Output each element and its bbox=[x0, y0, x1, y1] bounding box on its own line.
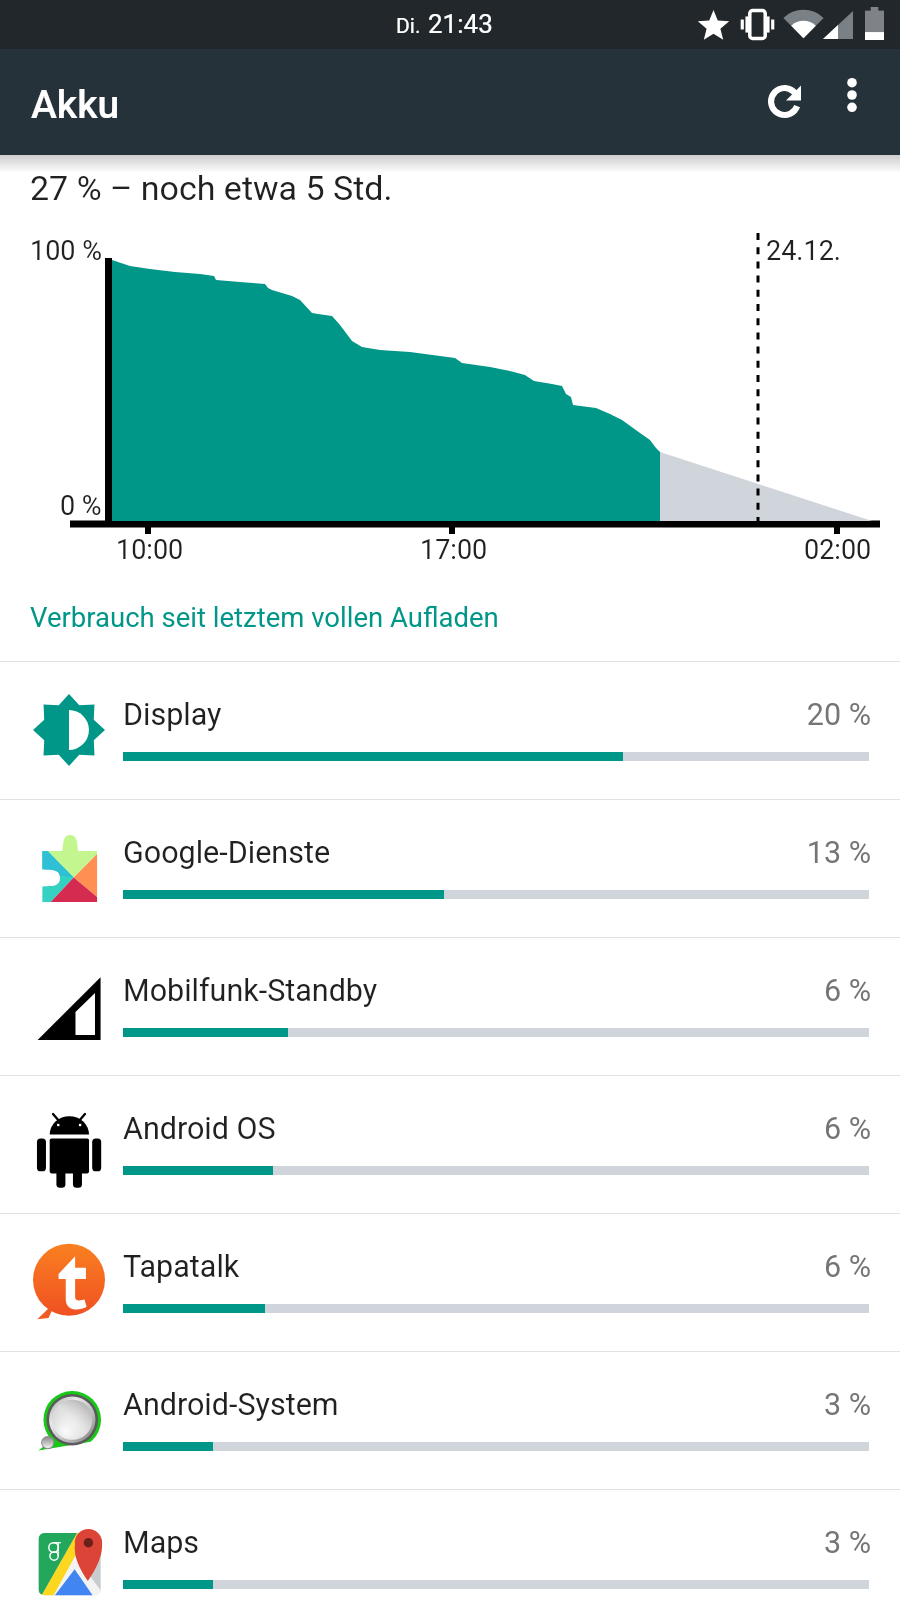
staticText: 17:00 bbox=[420, 534, 488, 566]
staticText: 13 % bbox=[600, 835, 871, 871]
staticText: 6 % bbox=[600, 1111, 871, 1147]
staticText: Maps bbox=[123, 1525, 200, 1561]
button[interactable]: Refresh bbox=[742, 58, 826, 142]
button[interactable]: Android-System bbox=[0, 1352, 900, 1489]
staticText: Mobilfunk-Standby bbox=[123, 973, 378, 1009]
staticText: 6 % bbox=[600, 1249, 871, 1285]
staticText: Akku bbox=[31, 82, 120, 128]
button[interactable]: Display bbox=[0, 662, 900, 799]
button[interactable]: More options bbox=[818, 58, 890, 130]
staticText: 02:00 bbox=[804, 534, 872, 566]
button[interactable]: Tapatalk bbox=[0, 1214, 900, 1351]
staticText: Tapatalk bbox=[123, 1249, 240, 1285]
button[interactable]: Maps bbox=[0, 1490, 900, 1600]
staticText: 27 % – noch etwa 5 Std. bbox=[30, 168, 393, 208]
staticText: 3 % bbox=[600, 1525, 871, 1561]
staticText: 24.12. bbox=[766, 235, 841, 267]
staticText: Google-Dienste bbox=[123, 835, 331, 871]
staticText: 21:43 bbox=[428, 9, 493, 39]
staticText: 6 % bbox=[600, 973, 871, 1009]
staticText: 3 % bbox=[600, 1387, 871, 1423]
staticText: Android-System bbox=[123, 1387, 339, 1423]
staticText: Android OS bbox=[123, 1111, 276, 1147]
button[interactable]: Android OS bbox=[0, 1076, 900, 1213]
button[interactable]: Google-Dienste bbox=[0, 800, 900, 937]
staticText: 0 % bbox=[60, 490, 102, 522]
staticText: 100 % bbox=[30, 235, 102, 267]
button[interactable]: Verbrauch seit letztem vollen Aufladen bbox=[0, 585, 900, 657]
staticText: Di. bbox=[396, 14, 421, 39]
staticText: Display bbox=[123, 697, 222, 733]
button[interactable]: Mobilfunk-Standby bbox=[0, 938, 900, 1075]
staticText: 10:00 bbox=[116, 534, 184, 566]
staticText: Verbrauch seit letztem vollen Aufladen bbox=[30, 601, 499, 633]
staticText: 20 % bbox=[600, 697, 871, 733]
